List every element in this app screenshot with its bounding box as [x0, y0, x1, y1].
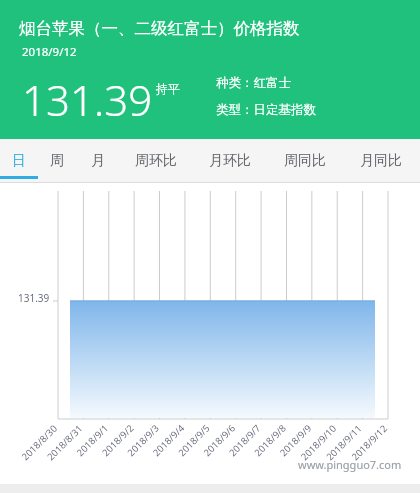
staticText: 日	[12, 152, 26, 170]
staticText: 月环比	[209, 152, 251, 170]
staticText: 类型：日定基指数	[216, 102, 316, 118]
button[interactable]: 月环比	[192, 139, 267, 183]
staticText: 月	[91, 152, 105, 170]
button[interactable]: 周环比	[120, 139, 192, 183]
staticText: 月同比	[360, 152, 402, 170]
button[interactable]: 周	[38, 139, 76, 183]
staticText: 2018/9/12	[22, 44, 77, 60]
staticText: 持平	[156, 81, 180, 96]
staticText: 周	[50, 152, 64, 170]
button[interactable]: 周同比	[267, 139, 342, 183]
staticText: 131.39	[22, 71, 153, 128]
button[interactable]: 月同比	[342, 139, 420, 183]
staticText: 种类：红富士	[216, 75, 291, 91]
button[interactable]: 月	[76, 139, 120, 183]
staticText: 烟台苹果（一、二级红富士）价格指数	[19, 18, 300, 39]
staticText: 周环比	[135, 152, 177, 170]
button[interactable]: 日	[0, 139, 38, 183]
staticText: 周同比	[284, 152, 326, 170]
